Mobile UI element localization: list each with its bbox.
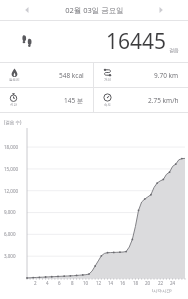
button[interactable]: 16445 xyxy=(0,21,188,62)
staticText: 16 xyxy=(120,280,126,286)
button[interactable]: Previous day xyxy=(0,0,54,20)
staticText: 22 xyxy=(158,280,164,286)
staticText: 4 xyxy=(46,280,49,286)
staticText: 12,000 xyxy=(4,188,19,194)
staticText: (시각:시간) xyxy=(152,288,172,293)
staticText: 시간 xyxy=(10,103,17,107)
staticText: 14 xyxy=(108,280,114,286)
staticText: 9.70 km xyxy=(154,71,179,80)
staticText: 18,000 xyxy=(4,144,19,150)
staticText: 145 분 xyxy=(64,96,84,105)
staticText: 거리 xyxy=(104,78,111,82)
button[interactable] xyxy=(0,0,188,299)
staticText: 12 xyxy=(96,280,102,286)
staticText: 속도 xyxy=(104,103,111,107)
staticText: 18 xyxy=(133,280,139,286)
staticText: 548 kcal xyxy=(59,71,84,80)
button[interactable]: 칼로리 xyxy=(0,63,93,87)
staticText: 20 xyxy=(145,280,151,286)
button[interactable]: Next day xyxy=(134,0,188,20)
staticText: 10 xyxy=(83,280,89,286)
button[interactable]: 속도 xyxy=(94,88,188,112)
button[interactable]: 시간 xyxy=(0,88,93,112)
button[interactable]: 거리 xyxy=(94,63,188,87)
staticText: (걸음 수) xyxy=(4,119,22,125)
staticText: 걸음 xyxy=(169,47,179,53)
staticText: 2.75 km/h xyxy=(148,96,179,105)
staticText: 24 xyxy=(170,280,176,286)
staticText: 2 xyxy=(34,280,37,286)
staticText: 6,000 xyxy=(4,231,16,237)
staticText: 9,000 xyxy=(4,209,16,215)
staticText: 3,000 xyxy=(4,253,16,259)
staticText: 02월 03일 금요일 xyxy=(65,5,124,15)
staticText: 8 xyxy=(71,280,74,286)
staticText: 16445 xyxy=(106,27,167,56)
staticText: 6 xyxy=(58,280,61,286)
staticText: 칼로리 xyxy=(9,78,20,82)
staticText: 15,000 xyxy=(4,166,19,172)
